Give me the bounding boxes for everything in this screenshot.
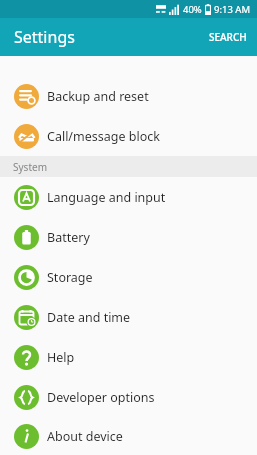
button[interactable]: Call/message block: [0, 116, 257, 156]
button[interactable]: Backup and reset: [0, 76, 257, 116]
button[interactable]: Developer options: [0, 377, 257, 417]
staticText: Storage: [47, 269, 93, 286]
staticText: Backup and reset: [47, 88, 149, 105]
staticText: Language and input: [47, 189, 166, 206]
staticText: Date and time: [47, 309, 131, 326]
staticText: SEARCH: [209, 30, 247, 44]
staticText: Battery: [47, 229, 90, 246]
staticText: 9:13 AM: [214, 3, 251, 16]
button[interactable]: Help: [0, 337, 257, 377]
button[interactable]: Storage: [0, 257, 257, 297]
button[interactable]: SEARCH: [199, 24, 257, 50]
staticText: Settings: [14, 26, 75, 48]
button[interactable]: Battery: [0, 217, 257, 257]
staticText: 40%: [183, 3, 202, 16]
staticText: Call/message block: [47, 128, 160, 145]
staticText: Developer options: [47, 389, 155, 406]
button[interactable]: Date and time: [0, 297, 257, 337]
staticText: About device: [47, 428, 123, 445]
staticText: Help: [47, 349, 75, 366]
staticText: System: [13, 160, 47, 174]
button[interactable]: Language and input: [0, 177, 257, 217]
button[interactable]: About device: [0, 417, 257, 455]
